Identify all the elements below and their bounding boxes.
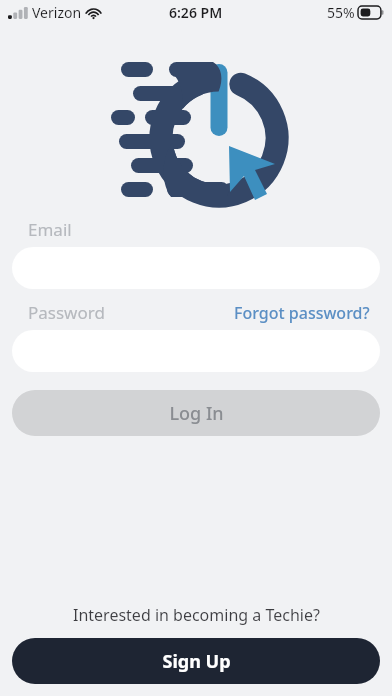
- staticText: Password: [28, 301, 105, 324]
- button[interactable]: Forgot password?: [234, 302, 370, 324]
- staticText: Email: [28, 218, 72, 241]
- staticText: Sign Up: [162, 649, 231, 674]
- staticText: 55%: [327, 3, 355, 22]
- staticText: Log In: [169, 401, 224, 426]
- staticText: Verizon: [32, 3, 82, 22]
- button[interactable]: Sign Up: [12, 638, 380, 684]
- staticText: Interested in becoming a Techie?: [73, 604, 320, 626]
- staticText: 6:26 PM: [169, 3, 223, 22]
- button[interactable]: Log In: [12, 390, 380, 436]
- staticText: Forgot password?: [234, 302, 370, 324]
